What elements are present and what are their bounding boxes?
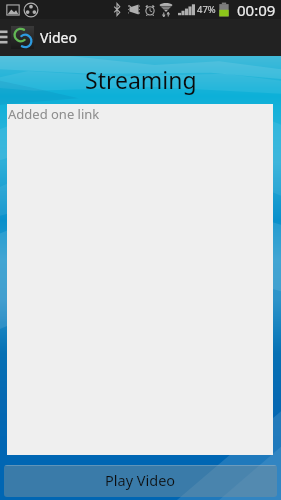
staticText: 47% [197,3,216,16]
button[interactable]: Play Video [4,465,277,497]
staticText: 00:09 [237,0,276,19]
staticText: Video [40,28,77,47]
button[interactable]: Menu [0,19,9,56]
staticText: Play Video [105,470,176,490]
staticText: Added one link [8,105,100,123]
staticText: Streaming [85,64,197,95]
